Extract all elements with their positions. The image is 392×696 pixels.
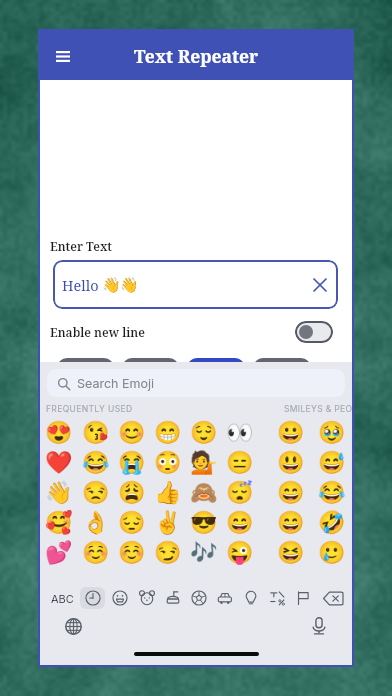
staticText: 😄 [277,480,305,506]
button[interactable]: 💕 [40,538,77,568]
button[interactable]: 😄 [271,508,311,538]
button[interactable]: 😭 [114,448,150,478]
button[interactable]: Flags [290,585,316,611]
button[interactable]: ✌️ [150,508,186,538]
staticText: 😭 [118,450,146,476]
button[interactable]: 😏 [150,538,186,568]
staticText: 😑 [226,450,254,476]
staticText: 😩 [118,480,146,506]
button[interactable]: 😆 [271,538,311,568]
button[interactable]: 🥰 [40,508,77,538]
staticText: 😀 [277,420,305,446]
staticText: FREQUENTLY USED [46,404,133,414]
button[interactable]: Objects [238,585,264,611]
staticText: 😳 [154,450,182,476]
button[interactable]: 🤣 [311,508,352,538]
staticText: 😃 [277,450,305,476]
button[interactable]: Hello [53,260,338,309]
button[interactable]: 💁 [186,448,222,478]
staticText: 😁 [154,420,182,446]
staticText: 😂 [82,450,110,476]
staticText: 😄 [277,510,305,536]
button[interactable]: 🥹 [311,418,352,448]
button[interactable]: Dictation [306,613,332,639]
staticText: Enable new line [50,324,145,340]
staticText: 😏 [154,540,182,566]
button[interactable]: 😃 [271,448,311,478]
staticText: 👌 [82,510,110,536]
button[interactable]: 😀 [271,418,311,448]
button[interactable]: 🥲 [311,538,352,568]
staticText: Hello [62,275,99,295]
staticText: 😍 [45,420,73,446]
button[interactable]: 😜 [222,538,258,568]
button[interactable] [57,358,114,392]
staticText: ✌️ [154,510,182,536]
button[interactable]: 👀 [222,418,258,448]
staticText: 😜 [226,540,254,566]
button[interactable]: ☺️ [77,538,114,568]
button[interactable] [187,358,245,392]
button[interactable]: 😄 [222,508,258,538]
button[interactable]: 😎 [186,508,222,538]
staticText: 👋👋 [102,276,138,294]
button[interactable]: Delete [316,585,350,611]
button[interactable]: 👋 [40,478,77,508]
button[interactable]: 😘 [77,418,114,448]
staticText: ☺️ [118,540,146,566]
button[interactable]: ☺️ [114,538,150,568]
staticText: Search Emoji [77,376,155,391]
button[interactable]: 🙈 [186,478,222,508]
button[interactable]: Switch keyboard language [60,613,86,639]
button[interactable]: 👍 [150,478,186,508]
button[interactable]: Symbols [264,585,290,611]
staticText: 👀 [226,420,254,446]
button[interactable]: Animals and nature [133,585,160,611]
button[interactable]: 🎶 [186,538,222,568]
staticText: Text Repeater [134,44,259,68]
staticText: SMILEYS & PEOPLE [284,404,352,414]
staticText: 🎶 [190,540,218,566]
staticText: 😊 [118,420,146,446]
staticText: 🥲 [318,540,346,566]
button[interactable]: Travel and places [212,585,238,611]
button[interactable]: 😔 [114,508,150,538]
button[interactable] [122,358,179,392]
staticText: 😒 [82,480,110,506]
button[interactable]: ❤️ [40,448,77,478]
staticText: 🥹 [318,420,346,446]
staticText: 😄 [226,510,254,536]
button[interactable]: 😌 [186,418,222,448]
button[interactable]: 😑 [222,448,258,478]
button[interactable]: ABC [45,585,79,611]
button[interactable]: Smileys and people [106,585,133,611]
button[interactable]: 😂 [77,448,114,478]
button[interactable]: Food and drink [160,585,186,611]
button[interactable]: Recently used [79,585,106,611]
button[interactable]: 😴 [222,478,258,508]
button[interactable]: 😊 [114,418,150,448]
staticText: 👍 [154,480,182,506]
button[interactable]: 😒 [77,478,114,508]
staticText: Enter Text [50,238,112,254]
staticText: 😎 [190,510,218,536]
staticText: 🙈 [190,480,218,506]
staticText: 💁 [190,450,218,476]
button[interactable]: Menu [46,39,80,73]
staticText: 👋 [45,480,73,506]
button[interactable]: 😄 [271,478,311,508]
button[interactable]: 😳 [150,448,186,478]
button[interactable]: 😅 [311,448,352,478]
button[interactable]: 👌 [77,508,114,538]
staticText: 😴 [226,480,254,506]
button[interactable] [253,358,311,392]
button[interactable]: 😁 [150,418,186,448]
button[interactable] [295,321,333,343]
button[interactable]: Search Emoji [47,369,345,397]
button[interactable]: Activity [186,585,212,611]
button[interactable]: 😩 [114,478,150,508]
button[interactable]: 😍 [40,418,77,448]
button[interactable]: 😂 [311,478,352,508]
staticText: ❤️ [45,450,73,476]
button[interactable]: Clear text [309,274,331,296]
